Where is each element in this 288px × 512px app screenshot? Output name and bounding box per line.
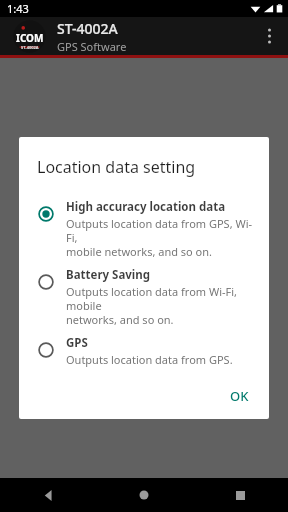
staticText: 1:43 [7, 1, 29, 16]
staticText: OK [230, 387, 249, 405]
staticText: Outputs location data from Wi-Fi, mobile… [66, 284, 257, 327]
button[interactable]: Home [96, 478, 192, 512]
staticText: ICOM [16, 31, 44, 45]
staticText: GPS [66, 335, 88, 351]
button[interactable]: OK [218, 378, 261, 414]
button[interactable]: Back [0, 478, 96, 512]
button[interactable]: High accuracy location data [19, 194, 269, 262]
button[interactable]: More options [250, 17, 288, 55]
staticText: High accuracy location data [66, 199, 226, 215]
staticText: ST-4002A [57, 19, 118, 38]
staticText: Location data setting [37, 156, 196, 178]
staticText: ST-4002A [21, 45, 39, 50]
staticText: Battery Saving [66, 267, 151, 283]
button[interactable]: GPS [19, 330, 269, 370]
button[interactable]: Battery Saving [19, 262, 269, 330]
staticText: Outputs location data from GPS, Wi-Fi, m… [66, 216, 257, 259]
button[interactable]: Recents [192, 478, 288, 512]
staticText: Outputs location data from GPS. [66, 352, 233, 367]
staticText: GPS Software [57, 39, 127, 54]
